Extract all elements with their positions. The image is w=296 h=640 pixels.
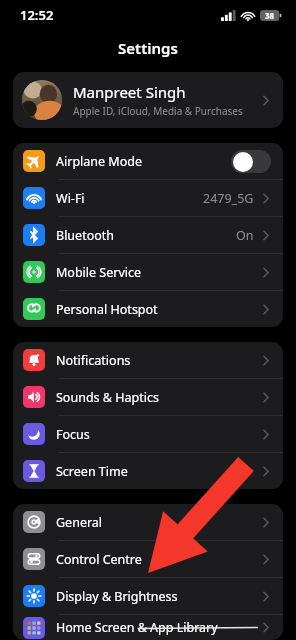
staticText: Apple ID, iCloud, Media & Purchases <box>73 104 243 118</box>
button[interactable]: Airplane Mode <box>13 143 283 179</box>
button[interactable]: Home Screen & App Library <box>13 615 283 640</box>
staticText: Focus <box>56 426 90 443</box>
button[interactable]: Personal Hotspot <box>13 291 283 327</box>
staticText: Sounds & Haptics <box>56 389 159 406</box>
button[interactable]: Control Centre <box>13 541 283 577</box>
staticText: Airplane Mode <box>56 153 142 170</box>
staticText: Bluetooth <box>56 227 115 244</box>
staticText: 38 <box>265 10 275 21</box>
staticText: Wi-Fi <box>56 190 85 207</box>
staticText: Mobile Service <box>56 264 142 281</box>
staticText: General <box>56 514 103 531</box>
button[interactable]: Manpreet Singh <box>13 72 283 128</box>
staticText: 12:52 <box>20 6 54 24</box>
staticText: Home Screen & App Library <box>56 619 218 636</box>
button[interactable]: Sounds & Haptics <box>13 379 283 415</box>
staticText: Display & Brightness <box>56 588 178 605</box>
button[interactable]: Notifications <box>13 342 283 378</box>
button[interactable]: Bluetooth <box>13 217 283 253</box>
button[interactable]: Airplane Mode toggle <box>231 150 271 173</box>
staticText: Notifications <box>56 352 131 369</box>
button[interactable]: Display & Brightness <box>13 578 283 614</box>
staticText: Control Centre <box>56 551 142 568</box>
button[interactable]: Screen Time <box>13 453 283 489</box>
staticText: Screen Time <box>56 463 128 480</box>
staticText: Manpreet Singh <box>73 82 186 102</box>
button[interactable]: Mobile Service <box>13 254 283 290</box>
button[interactable]: Wi-Fi <box>13 180 283 216</box>
button[interactable]: Focus <box>13 416 283 452</box>
staticText: On <box>236 227 254 244</box>
staticText: 2479_5G <box>203 190 254 207</box>
button[interactable]: General <box>13 504 283 540</box>
staticText: Settings <box>118 38 178 58</box>
staticText: Personal Hotspot <box>56 301 158 318</box>
